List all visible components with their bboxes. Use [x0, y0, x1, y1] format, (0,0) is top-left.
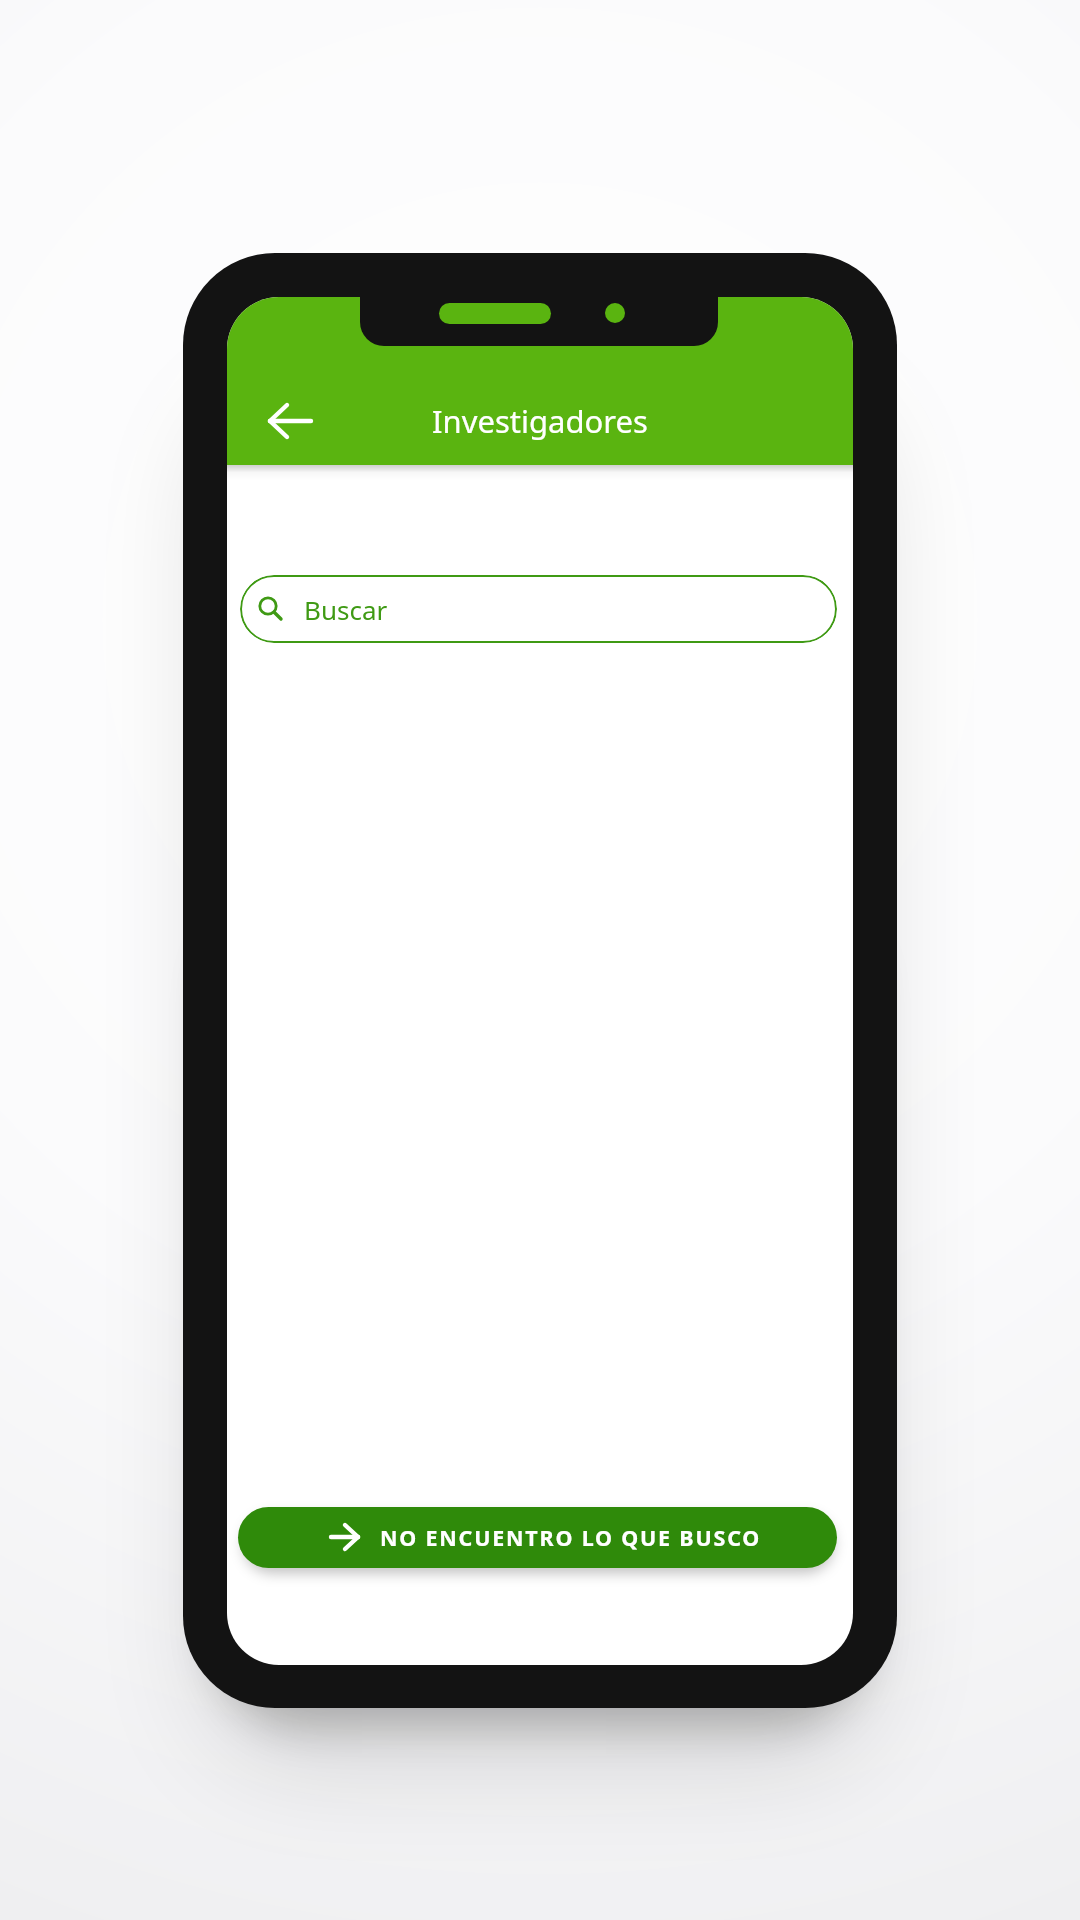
- staticText: NO ENCUENTRO LO QUE BUSCO: [380, 1523, 762, 1552]
- button[interactable]: [258, 391, 322, 451]
- button[interactable]: Buscar: [240, 575, 837, 643]
- staticText: Investigadores: [432, 400, 648, 442]
- button[interactable]: NO ENCUENTRO LO QUE BUSCO: [238, 1507, 837, 1568]
- staticText: Buscar: [304, 592, 388, 627]
